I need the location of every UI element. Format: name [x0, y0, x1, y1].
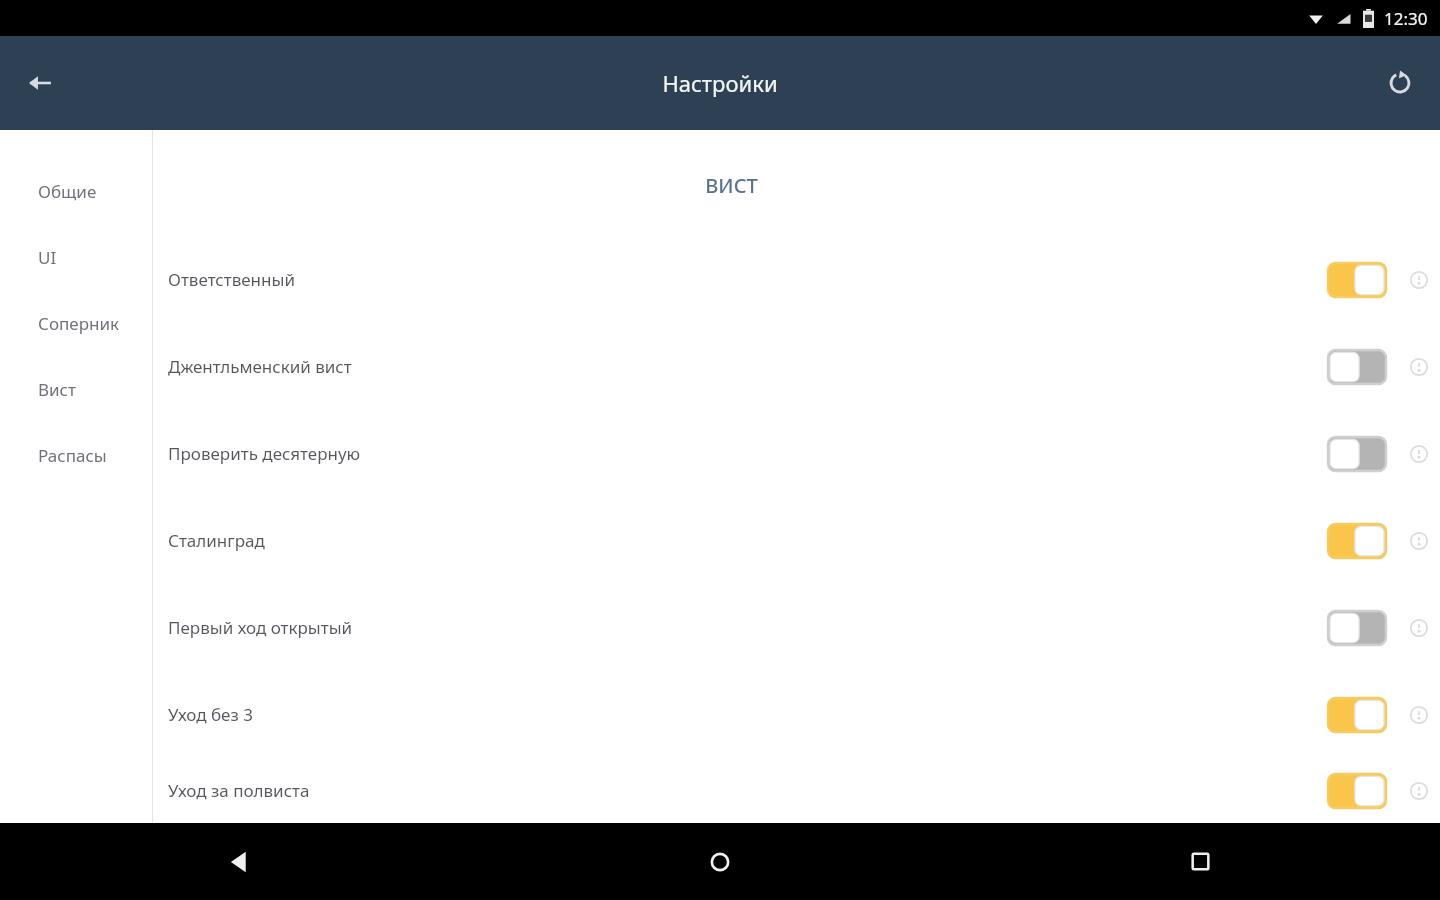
button[interactable]: Первый ход открытый — [153, 584, 1440, 671]
button[interactable]: Соперник — [0, 290, 152, 356]
staticText: Джентльменский вист — [168, 355, 1328, 378]
button[interactable]: Info — [1404, 526, 1434, 556]
button[interactable]: Off — [1328, 611, 1386, 645]
button[interactable]: Home — [480, 823, 960, 900]
staticText: Проверить десятерную — [168, 442, 1328, 465]
staticText: 12:30 — [1384, 7, 1428, 30]
staticText: Первый ход открытый — [168, 616, 1328, 639]
button[interactable]: Recents — [960, 823, 1440, 900]
staticText: Вист — [38, 378, 76, 401]
button[interactable]: Вист — [0, 356, 152, 422]
button[interactable]: Уход за полвиста — [153, 758, 1440, 823]
staticText: Уход без 3 — [168, 703, 1328, 726]
button[interactable]: Ответственный — [153, 236, 1440, 323]
button[interactable]: Off — [1328, 350, 1386, 384]
staticText: Уход за полвиста — [168, 779, 1328, 802]
staticText: Ответственный — [168, 268, 1328, 291]
button[interactable]: On — [1328, 263, 1386, 297]
button[interactable]: Распасы — [0, 422, 152, 488]
staticText: Настройки — [662, 68, 778, 98]
button[interactable]: Info — [1404, 439, 1434, 469]
staticText: Сталинград — [168, 529, 1328, 552]
button[interactable]: On — [1328, 524, 1386, 558]
staticText: ВИСТ — [153, 172, 1310, 199]
button[interactable]: Back — [12, 55, 68, 111]
staticText: Общие — [38, 180, 97, 203]
staticText: Распасы — [38, 444, 107, 467]
button[interactable]: Джентльменский вист — [153, 323, 1440, 410]
button[interactable]: Reset — [1372, 55, 1428, 111]
button[interactable]: Off — [1328, 437, 1386, 471]
button[interactable]: Back — [0, 823, 480, 900]
button[interactable]: Info — [1404, 776, 1434, 806]
button[interactable]: UI — [0, 224, 152, 290]
button[interactable]: Info — [1404, 265, 1434, 295]
button[interactable]: Уход без 3 — [153, 671, 1440, 758]
button[interactable]: On — [1328, 698, 1386, 732]
button[interactable]: Info — [1404, 613, 1434, 643]
button[interactable]: On — [1328, 774, 1386, 808]
staticText: Соперник — [38, 312, 120, 335]
button[interactable]: Проверить десятерную — [153, 410, 1440, 497]
button[interactable]: Общие — [0, 158, 152, 224]
button[interactable]: Info — [1404, 352, 1434, 382]
button[interactable]: Info — [1404, 700, 1434, 730]
button[interactable]: Сталинград — [153, 497, 1440, 584]
staticText: UI — [38, 246, 57, 269]
